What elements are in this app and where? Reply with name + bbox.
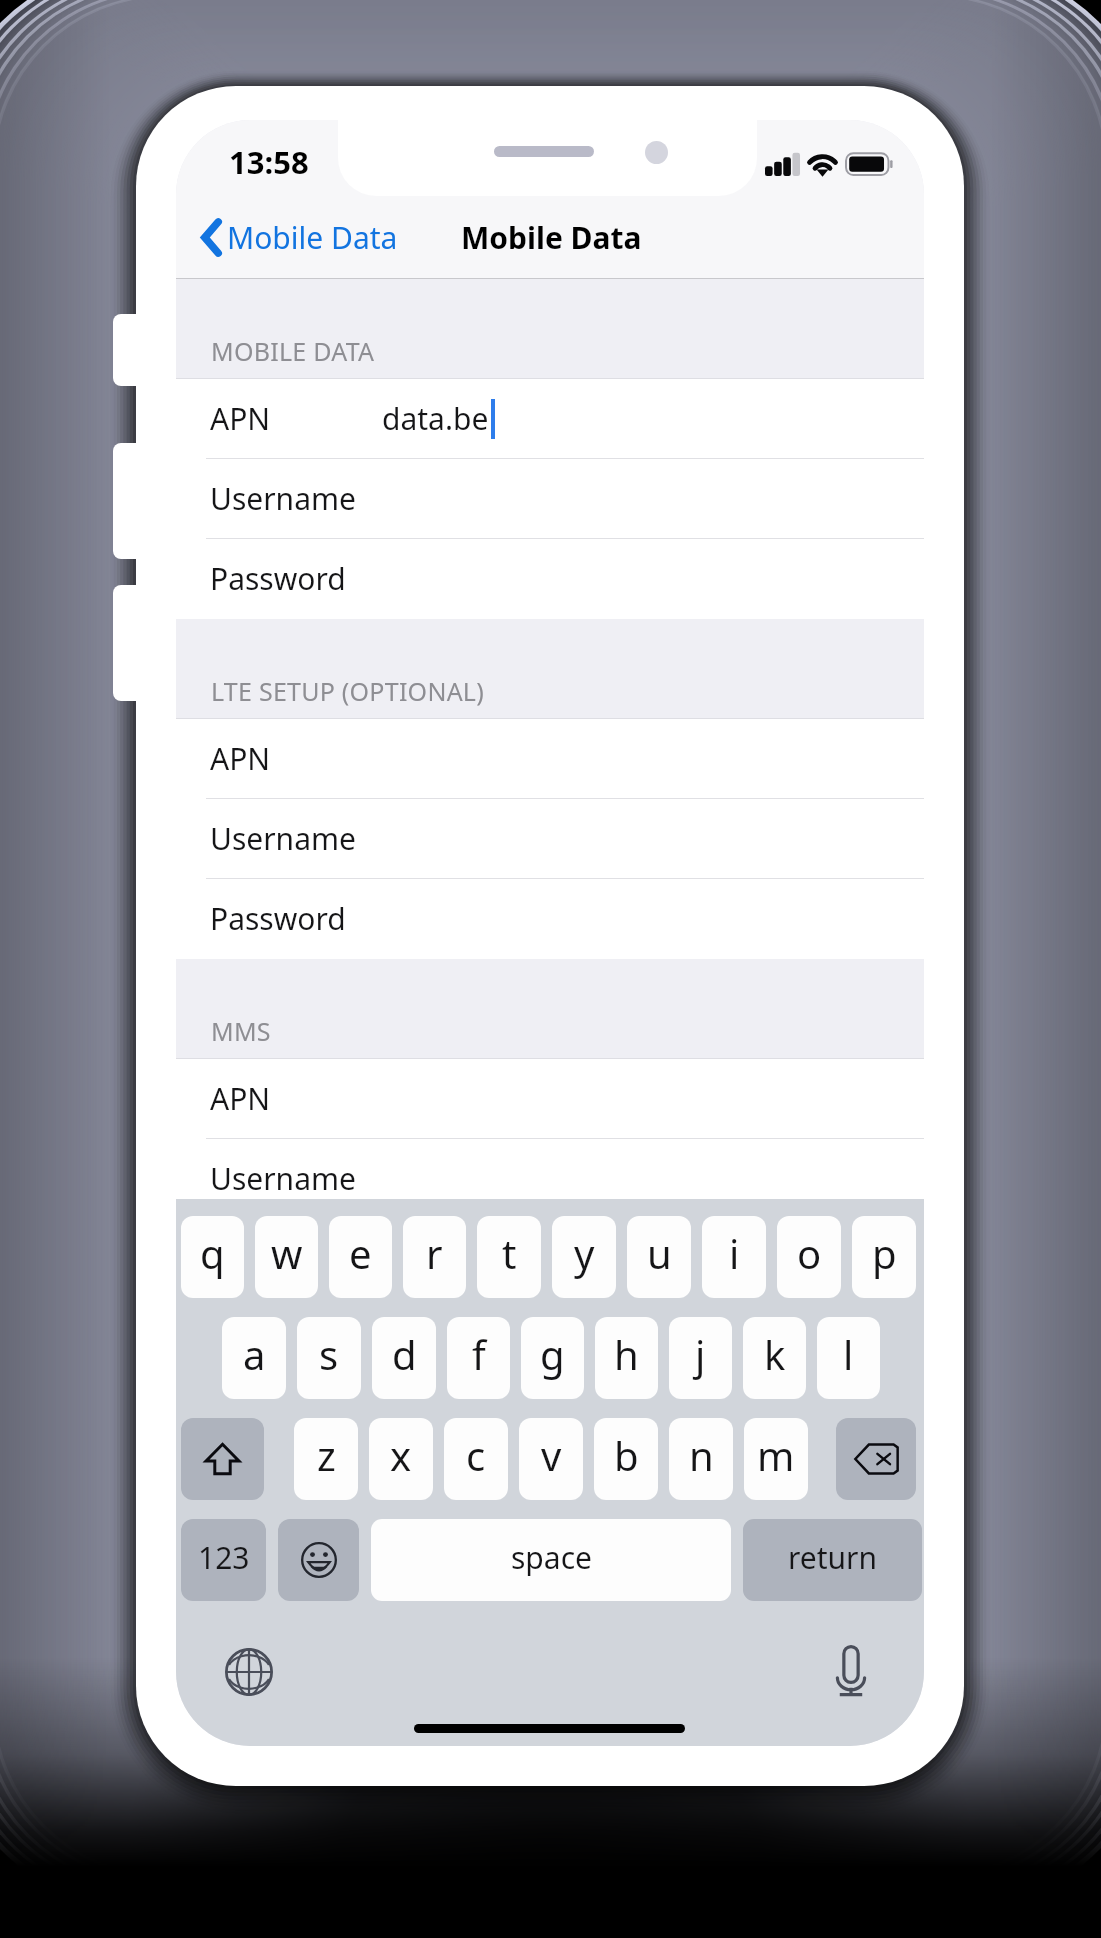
staticText: MMS: [211, 1014, 271, 1048]
button[interactable]: APN: [176, 379, 924, 459]
button[interactable]: x: [369, 1418, 433, 1500]
button[interactable]: b: [594, 1418, 658, 1500]
staticText: APN: [210, 738, 271, 779]
staticText: y: [574, 1226, 595, 1280]
staticText: Mobile Data: [461, 217, 642, 258]
button[interactable]: a: [222, 1317, 286, 1399]
button[interactable]: p: [852, 1216, 916, 1298]
button[interactable]: y: [552, 1216, 616, 1298]
other: Volume down: [113, 585, 161, 701]
button[interactable]: space: [371, 1519, 731, 1601]
button[interactable]: r: [403, 1216, 466, 1298]
button[interactable]: Shift: [181, 1418, 264, 1500]
button[interactable]: Backspace: [836, 1418, 916, 1500]
staticText: APN: [210, 1078, 271, 1119]
button[interactable]: Change keyboard: [213, 1636, 285, 1708]
button[interactable]: e: [329, 1216, 392, 1298]
staticText: Mobile Data: [227, 217, 398, 258]
staticText: s: [319, 1327, 339, 1381]
staticText: q: [200, 1226, 225, 1280]
staticText: 123: [198, 1537, 250, 1578]
staticText: data.be: [382, 398, 489, 439]
staticText: w: [271, 1226, 303, 1280]
staticText: return: [788, 1537, 878, 1578]
button[interactable]: l: [817, 1317, 880, 1399]
staticText: z: [317, 1428, 336, 1482]
button[interactable]: APN: [176, 1059, 924, 1139]
button[interactable]: z: [294, 1418, 358, 1500]
button[interactable]: Password: [176, 879, 924, 959]
button[interactable]: n: [669, 1418, 733, 1500]
staticText: n: [689, 1428, 714, 1482]
button[interactable]: g: [521, 1317, 584, 1399]
staticText: a: [243, 1327, 266, 1381]
staticText: Username: [210, 1158, 356, 1199]
button[interactable]: o: [777, 1216, 841, 1298]
staticText: r: [426, 1226, 443, 1280]
staticText: APN: [210, 398, 271, 439]
button[interactable]: c: [444, 1418, 508, 1500]
button[interactable]: v: [519, 1418, 583, 1500]
staticText: e: [349, 1226, 372, 1280]
button[interactable]: m: [744, 1418, 808, 1500]
button[interactable]: d: [372, 1317, 436, 1399]
staticText: Password: [210, 898, 346, 939]
button[interactable]: f: [447, 1317, 510, 1399]
staticText: h: [614, 1327, 639, 1381]
staticText: k: [764, 1327, 786, 1381]
staticText: d: [392, 1327, 417, 1381]
button[interactable]: Username: [176, 1139, 924, 1219]
staticText: Username: [210, 478, 356, 519]
button[interactable]: Username: [176, 799, 924, 879]
button[interactable]: Mobile Data: [189, 207, 410, 268]
button[interactable]: i: [702, 1216, 766, 1298]
other: Mute switch: [113, 314, 161, 386]
staticText: u: [647, 1226, 672, 1280]
staticText: LTE SETUP (OPTIONAL): [211, 674, 484, 708]
button[interactable]: t: [477, 1216, 541, 1298]
button[interactable]: Dictation: [815, 1635, 887, 1707]
button[interactable]: APN: [176, 719, 924, 799]
button[interactable]: Password: [176, 539, 924, 619]
button[interactable]: h: [595, 1317, 658, 1399]
button[interactable]: return: [743, 1519, 922, 1601]
staticText: Password: [210, 558, 346, 599]
staticText: i: [729, 1226, 740, 1280]
button[interactable]: Emoji: [278, 1519, 359, 1601]
staticText: space: [511, 1537, 592, 1578]
staticText: t: [502, 1226, 517, 1280]
staticText: b: [614, 1428, 639, 1482]
button[interactable]: w: [255, 1216, 318, 1298]
other: Volume up: [113, 443, 161, 559]
staticText: Username: [210, 818, 356, 859]
button[interactable]: j: [669, 1317, 732, 1399]
button[interactable]: k: [743, 1317, 806, 1399]
button[interactable]: Username: [176, 459, 924, 539]
button[interactable]: q: [181, 1216, 244, 1298]
staticText: MOBILE DATA: [211, 334, 375, 368]
staticText: 13:58: [229, 141, 309, 183]
staticText: o: [797, 1226, 822, 1280]
staticText: v: [541, 1428, 562, 1482]
button[interactable]: s: [297, 1317, 361, 1399]
staticText: x: [390, 1428, 412, 1482]
staticText: l: [843, 1327, 854, 1381]
staticText: g: [540, 1327, 565, 1381]
staticText: p: [872, 1226, 897, 1280]
button[interactable]: Numbers: [181, 1519, 266, 1601]
staticText: f: [472, 1327, 486, 1381]
staticText: m: [757, 1428, 795, 1482]
staticText: c: [466, 1428, 486, 1482]
staticText: j: [695, 1327, 706, 1381]
button[interactable]: u: [627, 1216, 691, 1298]
